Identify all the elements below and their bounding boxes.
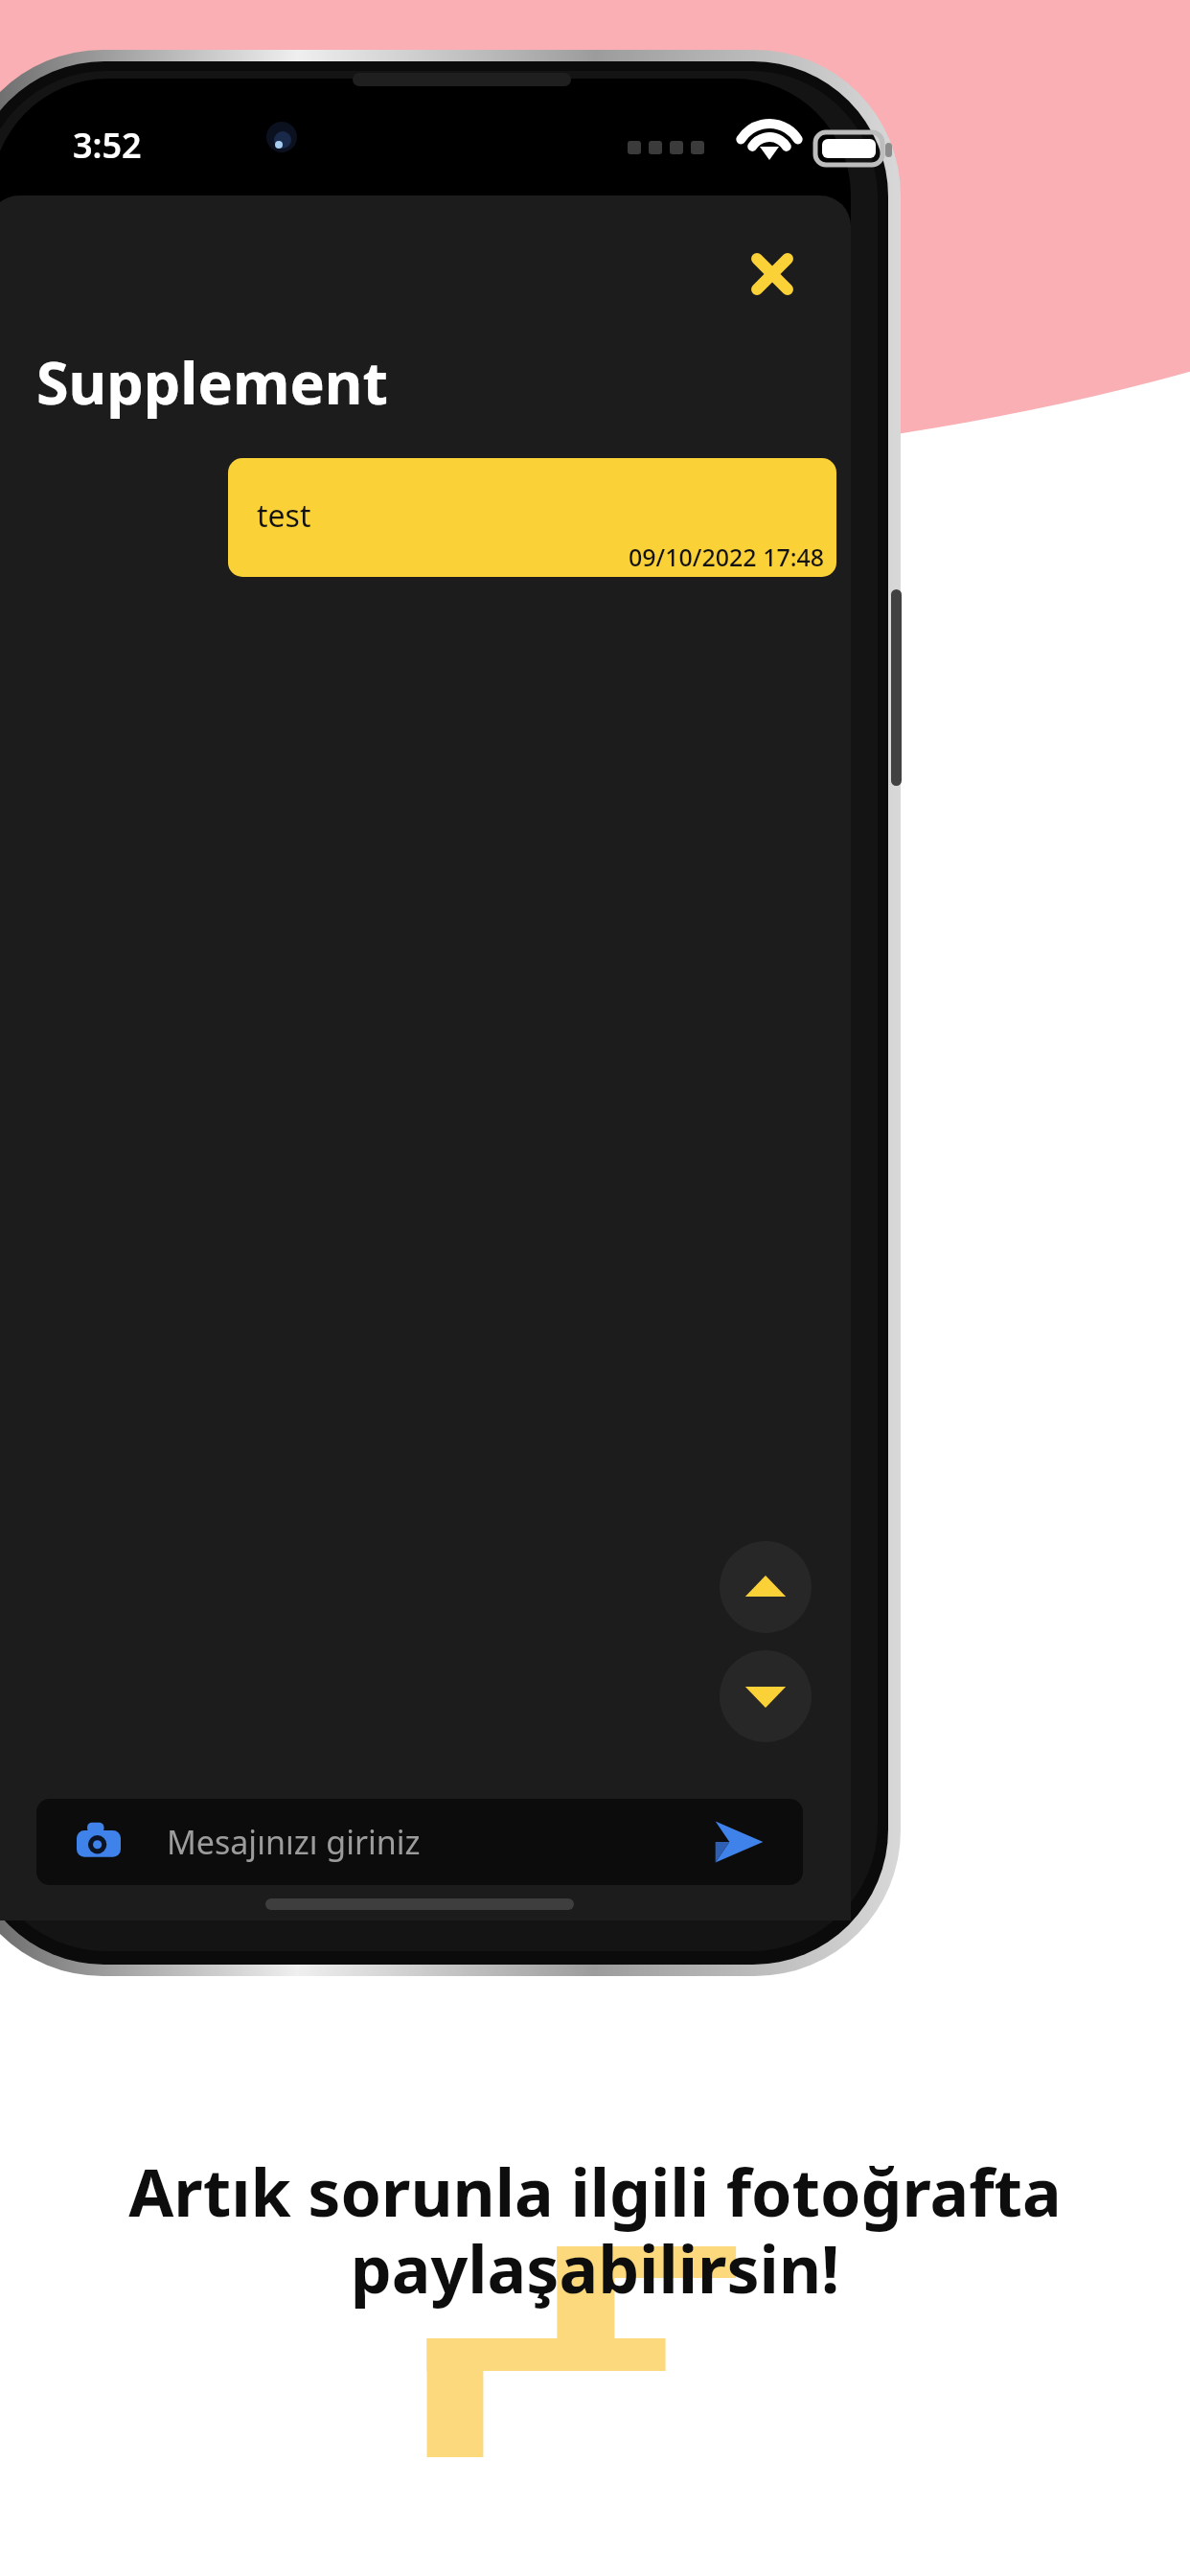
staticText: test xyxy=(257,494,311,537)
button[interactable]: Close xyxy=(728,230,816,318)
button[interactable]: Scroll up xyxy=(720,1541,812,1633)
button[interactable]: Camera xyxy=(36,1799,803,1885)
staticText: 3:52 xyxy=(73,122,142,169)
staticText: 09/10/2022 17:48 xyxy=(629,540,825,573)
staticText: Artık sorunla ilgili fotoğrafta paylaşab… xyxy=(53,2147,1137,2312)
button[interactable]: test xyxy=(228,458,836,577)
button[interactable]: Scroll down xyxy=(720,1650,812,1742)
button[interactable]: Camera xyxy=(73,1816,125,1868)
staticText: Mesajınızı giriniz xyxy=(167,1820,421,1864)
button[interactable]: Send xyxy=(709,1812,768,1872)
staticText: Supplement xyxy=(36,342,388,422)
